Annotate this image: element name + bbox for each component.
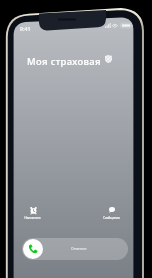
staticText: 9:41: [20, 25, 31, 32]
button[interactable]: Ответьте: [22, 238, 128, 260]
staticText: Напомнить: [14, 216, 51, 220]
staticText: Моя страховая: [27, 55, 101, 68]
button[interactable]: Напомнить: [20, 203, 46, 224]
button[interactable]: Answer call: [23, 239, 43, 259]
staticText: Ответьте: [71, 246, 87, 251]
staticText: Сообщения: [93, 216, 130, 220]
button[interactable]: Сообщения: [98, 203, 124, 224]
